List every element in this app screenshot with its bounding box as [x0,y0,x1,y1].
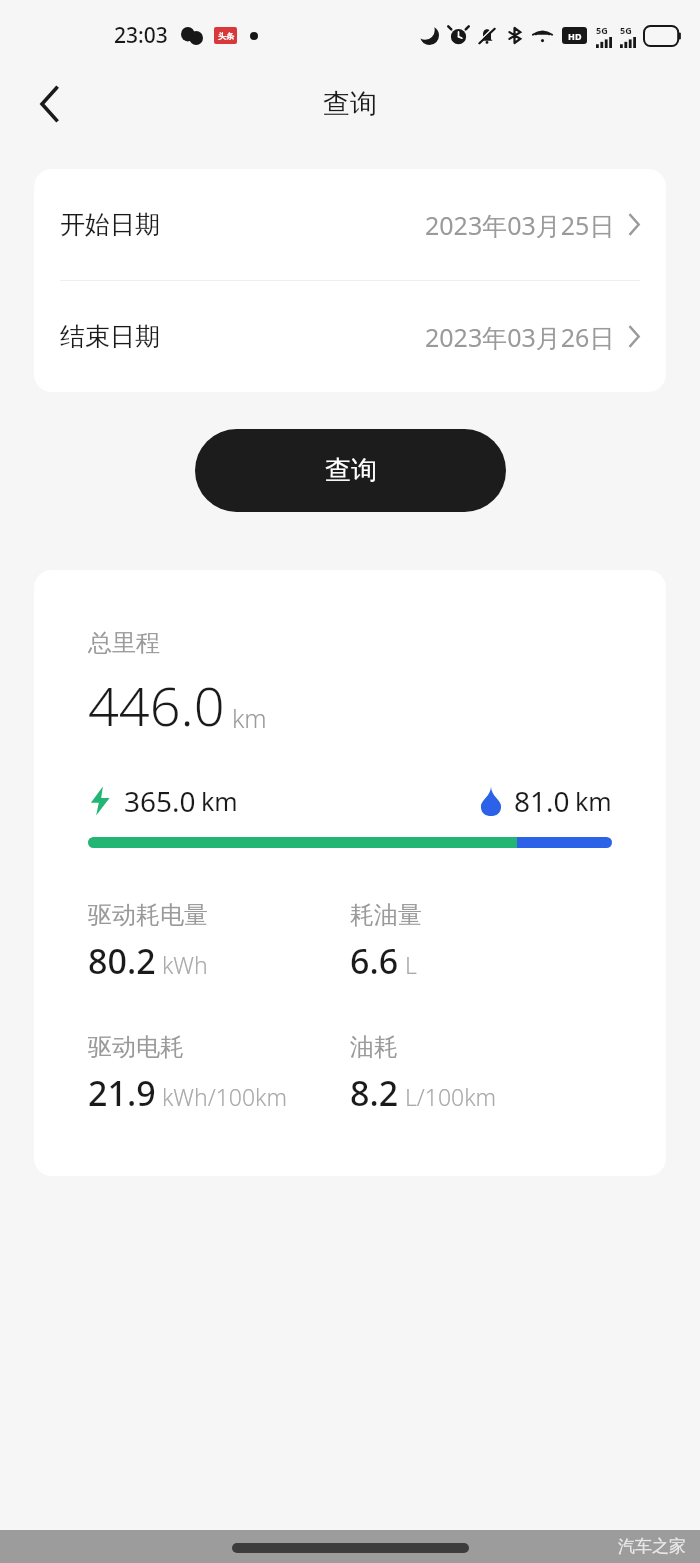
staticText: 查询 [325,454,377,487]
button[interactable]: 查询 [195,429,506,512]
staticText: 驱动电耗 [88,1032,184,1062]
staticText: km [201,784,238,818]
staticText: 汽车之家 [618,1536,686,1557]
staticText: 查询 [323,87,377,121]
staticText: 头条 [218,31,234,41]
staticText: 油耗 [350,1032,398,1062]
staticText: 总里程 [88,628,160,658]
button[interactable]: Back [22,76,78,132]
staticText: L/100km [405,1081,497,1112]
staticText: 5G [620,24,632,36]
staticText: 2023年03月26日 [425,320,615,354]
staticText: 23:03 [114,21,168,50]
staticText: km [232,701,267,735]
staticText: 365.0 [124,782,196,820]
staticText: HD [568,30,582,42]
staticText: 结束日期 [60,321,160,352]
staticText: 8.2 [350,1070,399,1116]
staticText: 驱动耗电量 [88,900,208,930]
staticText: 2023年03月25日 [425,208,615,242]
staticText: km [575,784,612,818]
staticText: L [405,949,417,980]
button[interactable]: 结束日期 [34,281,666,392]
staticText: 80.2 [88,938,156,984]
staticText: 6.6 [350,938,399,984]
staticText: kWh/100km [162,1081,288,1112]
staticText: 5G [596,24,608,36]
staticText: kWh [162,949,208,980]
staticText: 446.0 [88,668,225,742]
staticText: 21.9 [88,1070,156,1116]
staticText: 耗油量 [350,900,422,930]
button[interactable]: 开始日期 [34,169,666,280]
staticText: 81.0 [514,782,570,820]
staticText: 开始日期 [60,209,160,240]
